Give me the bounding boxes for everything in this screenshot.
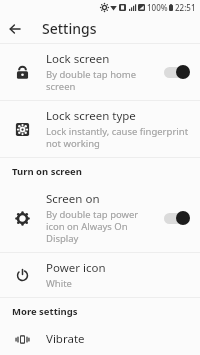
staticText: Vibrate bbox=[46, 331, 85, 347]
button[interactable]: Screen on bbox=[0, 184, 200, 252]
button[interactable]: Lock screen bbox=[0, 44, 200, 100]
button[interactable]: Vibrate bbox=[0, 324, 200, 355]
staticText: Lock instantly, cause fingerprint not wo… bbox=[46, 125, 190, 150]
staticText: By double tap home screen bbox=[46, 68, 156, 93]
staticText: Turn on screen bbox=[12, 165, 82, 178]
staticText: Settings bbox=[42, 19, 97, 38]
staticText: By double tap power icon on Always On Di… bbox=[46, 208, 156, 245]
button[interactable]: Power icon bbox=[0, 253, 200, 297]
staticText: 100% bbox=[147, 2, 168, 13]
button[interactable]: Toggle Screen on bbox=[162, 210, 190, 226]
staticText: Lock screen type bbox=[46, 108, 136, 124]
staticText: Screen on bbox=[46, 191, 100, 207]
staticText: Power icon bbox=[46, 260, 106, 276]
button[interactable]: Toggle Lock screen bbox=[162, 64, 190, 80]
staticText: White bbox=[46, 277, 72, 290]
staticText: More settings bbox=[12, 305, 78, 318]
button[interactable]: Back bbox=[0, 14, 30, 43]
button[interactable]: Lock screen type bbox=[0, 101, 200, 157]
staticText: Lock screen bbox=[46, 51, 110, 67]
staticText: 22:51 bbox=[175, 2, 196, 13]
